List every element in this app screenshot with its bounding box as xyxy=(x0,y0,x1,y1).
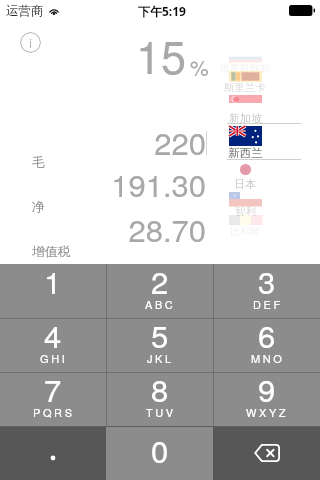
button[interactable]: Info xyxy=(20,32,41,53)
button[interactable]: Delete xyxy=(213,426,320,480)
staticText: 新加坡 xyxy=(229,111,262,124)
staticText: 191.30 xyxy=(0,161,206,205)
staticText: 运营商 xyxy=(6,3,44,19)
staticText: GHI xyxy=(40,350,68,366)
button[interactable]: 7 xyxy=(0,372,106,426)
staticText: 28.70 xyxy=(0,206,206,250)
staticText: 6 xyxy=(258,312,276,356)
button[interactable]: Decimal point xyxy=(0,426,106,480)
staticText: 220 xyxy=(0,119,206,163)
button[interactable]: 0 xyxy=(106,426,213,480)
staticText: ABC xyxy=(145,296,176,312)
staticText: 9 xyxy=(258,366,276,410)
staticText: 新西兰 xyxy=(228,146,263,159)
staticText: 4 xyxy=(44,312,62,356)
staticText: 净 xyxy=(32,199,45,215)
button[interactable]: 5 xyxy=(106,318,213,372)
button[interactable]: 2 xyxy=(106,264,213,318)
staticText: 7 xyxy=(44,366,62,410)
staticText: 8 xyxy=(151,366,169,410)
button[interactable]: 9 xyxy=(213,372,320,426)
button[interactable]: 6 xyxy=(213,318,320,372)
button[interactable]: VAT rate 15 percent xyxy=(136,22,206,86)
staticText: i xyxy=(29,34,33,52)
staticText: 下午5:19 xyxy=(138,3,186,19)
staticText: 1 xyxy=(44,258,62,302)
button[interactable]: 8 xyxy=(106,372,213,426)
staticText: 日本 xyxy=(234,177,256,190)
staticText: 2 xyxy=(151,258,169,302)
button[interactable]: 1 xyxy=(0,264,106,318)
staticText: 比利时 xyxy=(230,225,260,238)
button[interactable]: Country picker xyxy=(216,24,316,254)
staticText: PQRS xyxy=(33,404,75,420)
staticText: 斯里兰卡 xyxy=(224,81,266,94)
staticText: 智利 xyxy=(235,205,256,218)
staticText: 毛 xyxy=(32,155,45,171)
staticText: 增值税 xyxy=(32,244,71,260)
staticText: 5 xyxy=(151,312,169,356)
button[interactable]: 4 xyxy=(0,318,106,372)
staticText: 15 xyxy=(136,22,187,86)
staticText: MNO xyxy=(251,350,285,366)
staticText: TUV xyxy=(146,404,176,420)
staticText: % xyxy=(190,52,209,82)
staticText: DEF xyxy=(253,296,283,312)
staticText: 俄罗斯联邦 xyxy=(220,62,270,75)
staticText: WXYZ xyxy=(246,404,289,420)
button[interactable]: 3 xyxy=(213,264,320,318)
staticText: 3 xyxy=(258,258,276,302)
staticText: JKL xyxy=(147,350,174,366)
staticText: 0 xyxy=(151,427,169,471)
